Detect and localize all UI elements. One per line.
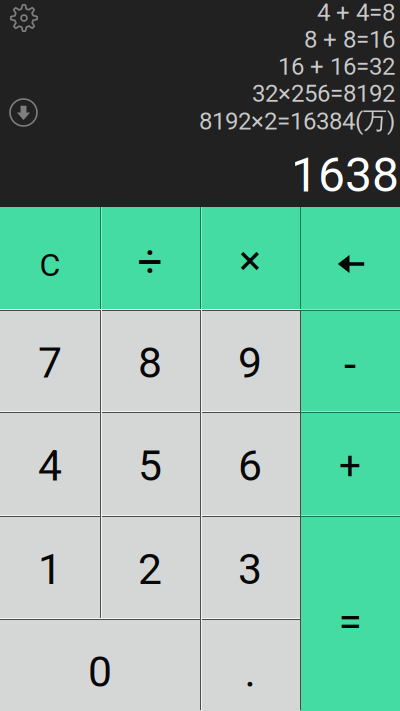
button[interactable]: Settings: [0, 0, 50, 40]
button[interactable]: 9: [200, 309, 300, 411]
staticText: .: [244, 647, 255, 697]
button[interactable]: C: [0, 207, 100, 309]
staticText: ×: [239, 236, 261, 284]
staticText: 4 + 4=8: [317, 0, 395, 26]
staticText: C: [39, 246, 60, 284]
staticText: 8 + 8=16: [304, 25, 395, 53]
staticText: 4: [38, 441, 62, 491]
button[interactable]: +: [300, 411, 400, 515]
button[interactable]: -: [300, 309, 400, 411]
button[interactable]: 0: [0, 618, 200, 711]
staticText: -: [344, 339, 356, 391]
button[interactable]: 6: [200, 411, 300, 515]
button[interactable]: 8: [100, 309, 200, 411]
button[interactable]: Backspace: [300, 207, 400, 309]
staticText: +: [339, 443, 361, 489]
button[interactable]: 7: [0, 309, 100, 411]
staticText: =: [338, 596, 361, 646]
staticText: 5: [138, 441, 162, 491]
staticText: 3: [238, 544, 262, 594]
staticText: 2: [138, 544, 162, 594]
button[interactable]: ×: [200, 207, 300, 309]
staticText: 9: [238, 338, 262, 388]
staticText: 8192×2=16384(万): [199, 105, 395, 136]
staticText: 7: [38, 338, 62, 388]
button[interactable]: 5: [100, 411, 200, 515]
staticText: 8: [138, 338, 162, 388]
staticText: 16384: [291, 147, 400, 203]
staticText: 1: [38, 544, 62, 594]
button[interactable]: 4: [0, 411, 100, 515]
button[interactable]: 1: [0, 515, 100, 618]
staticText: 6: [238, 441, 262, 491]
staticText: ÷: [137, 236, 162, 288]
button[interactable]: 2: [100, 515, 200, 618]
staticText: 16 + 16=32: [278, 52, 395, 80]
button[interactable]: .: [200, 618, 300, 711]
button[interactable]: 3: [200, 515, 300, 618]
button[interactable]: Download: [0, 91, 50, 134]
button[interactable]: ÷: [100, 207, 200, 309]
staticText: 32×256=8192: [252, 79, 395, 107]
staticText: 0: [88, 647, 112, 697]
button[interactable]: =: [300, 515, 400, 711]
